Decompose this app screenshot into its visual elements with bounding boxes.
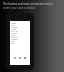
- button[interactable]: [11, 34, 29, 36]
- staticText: create your own schedule: [3, 6, 36, 10]
- button[interactable]: [11, 38, 29, 40]
- button[interactable]: [11, 28, 29, 30]
- button[interactable]: [11, 36, 29, 38]
- button[interactable]: [11, 40, 29, 42]
- button[interactable]: [11, 24, 29, 26]
- staticText: The fastest and most convenient way to: [3, 2, 54, 6]
- button[interactable]: [11, 42, 29, 44]
- button[interactable]: [11, 26, 29, 28]
- button[interactable]: [11, 30, 29, 32]
- button[interactable]: [11, 32, 29, 34]
- button[interactable]: [11, 22, 29, 24]
